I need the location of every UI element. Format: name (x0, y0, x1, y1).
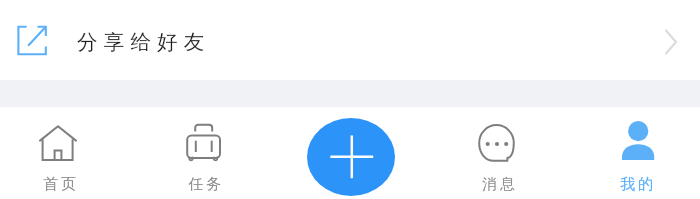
staticText: 消息 (444, 175, 556, 194)
button[interactable]: 消息 (441, 112, 553, 199)
button[interactable]: 任务 (148, 112, 260, 199)
staticText: 任务 (150, 175, 262, 194)
button[interactable]: 我的 (582, 112, 694, 199)
staticText: 首页 (5, 175, 117, 194)
button[interactable]: 首页 (2, 112, 114, 199)
staticText: 我的 (582, 175, 694, 194)
staticText: 分享给好友 (77, 29, 211, 55)
button[interactable]: 分享给好友 (0, 0, 700, 80)
button[interactable]: Add (307, 118, 395, 196)
